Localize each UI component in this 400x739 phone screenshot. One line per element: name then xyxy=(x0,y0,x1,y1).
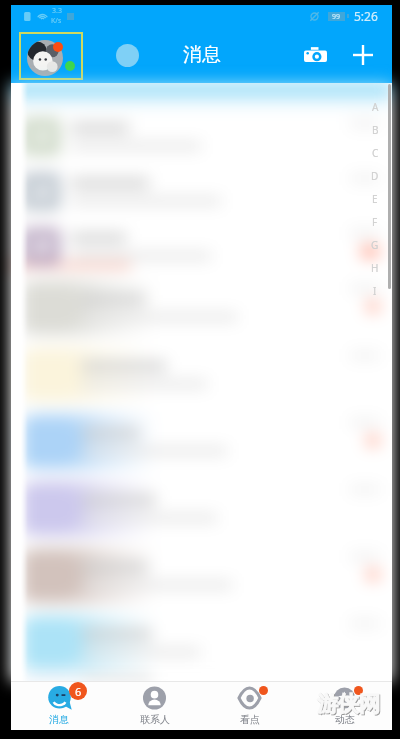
button[interactable] xyxy=(11,676,392,681)
staticText: I xyxy=(373,284,377,298)
staticText: 看点 xyxy=(240,713,260,726)
staticText: 99 xyxy=(332,12,341,21)
staticText: 消息 xyxy=(49,713,69,726)
button[interactable]: Add xyxy=(344,36,382,74)
staticText: 6 xyxy=(75,684,82,699)
staticText: A xyxy=(372,100,379,114)
button[interactable] xyxy=(11,341,392,408)
button[interactable]: Profile xyxy=(19,32,83,80)
button[interactable] xyxy=(11,219,392,274)
button[interactable]: Camera xyxy=(296,36,334,74)
staticText: K/s xyxy=(51,16,62,26)
staticText: C xyxy=(372,146,379,160)
staticText: 联系人 xyxy=(140,713,170,726)
button[interactable] xyxy=(11,164,392,219)
button[interactable] xyxy=(11,274,392,341)
button[interactable]: 动态 xyxy=(297,682,392,730)
button[interactable] xyxy=(11,475,392,542)
staticText: 3.3 xyxy=(52,6,62,16)
staticText: B xyxy=(372,123,379,137)
staticText: F xyxy=(372,215,378,229)
staticText: G xyxy=(371,238,379,252)
button[interactable] xyxy=(11,109,392,164)
button[interactable]: 看点 xyxy=(202,682,297,730)
button[interactable]: 6 xyxy=(11,682,107,730)
staticText: D xyxy=(371,169,379,183)
button[interactable] xyxy=(11,408,392,475)
button[interactable]: Story xyxy=(116,44,139,67)
staticText: H xyxy=(371,261,379,275)
button[interactable]: 联系人 xyxy=(107,682,202,730)
staticText: 游侠网 xyxy=(318,692,381,718)
staticText: 游侠网 xyxy=(317,691,380,717)
staticText: 5:26 xyxy=(354,8,378,24)
staticText: E xyxy=(372,192,378,206)
button[interactable] xyxy=(11,609,392,676)
button[interactable] xyxy=(11,542,392,609)
staticText: 动态 xyxy=(335,713,355,726)
staticText: 消息 xyxy=(183,43,221,67)
